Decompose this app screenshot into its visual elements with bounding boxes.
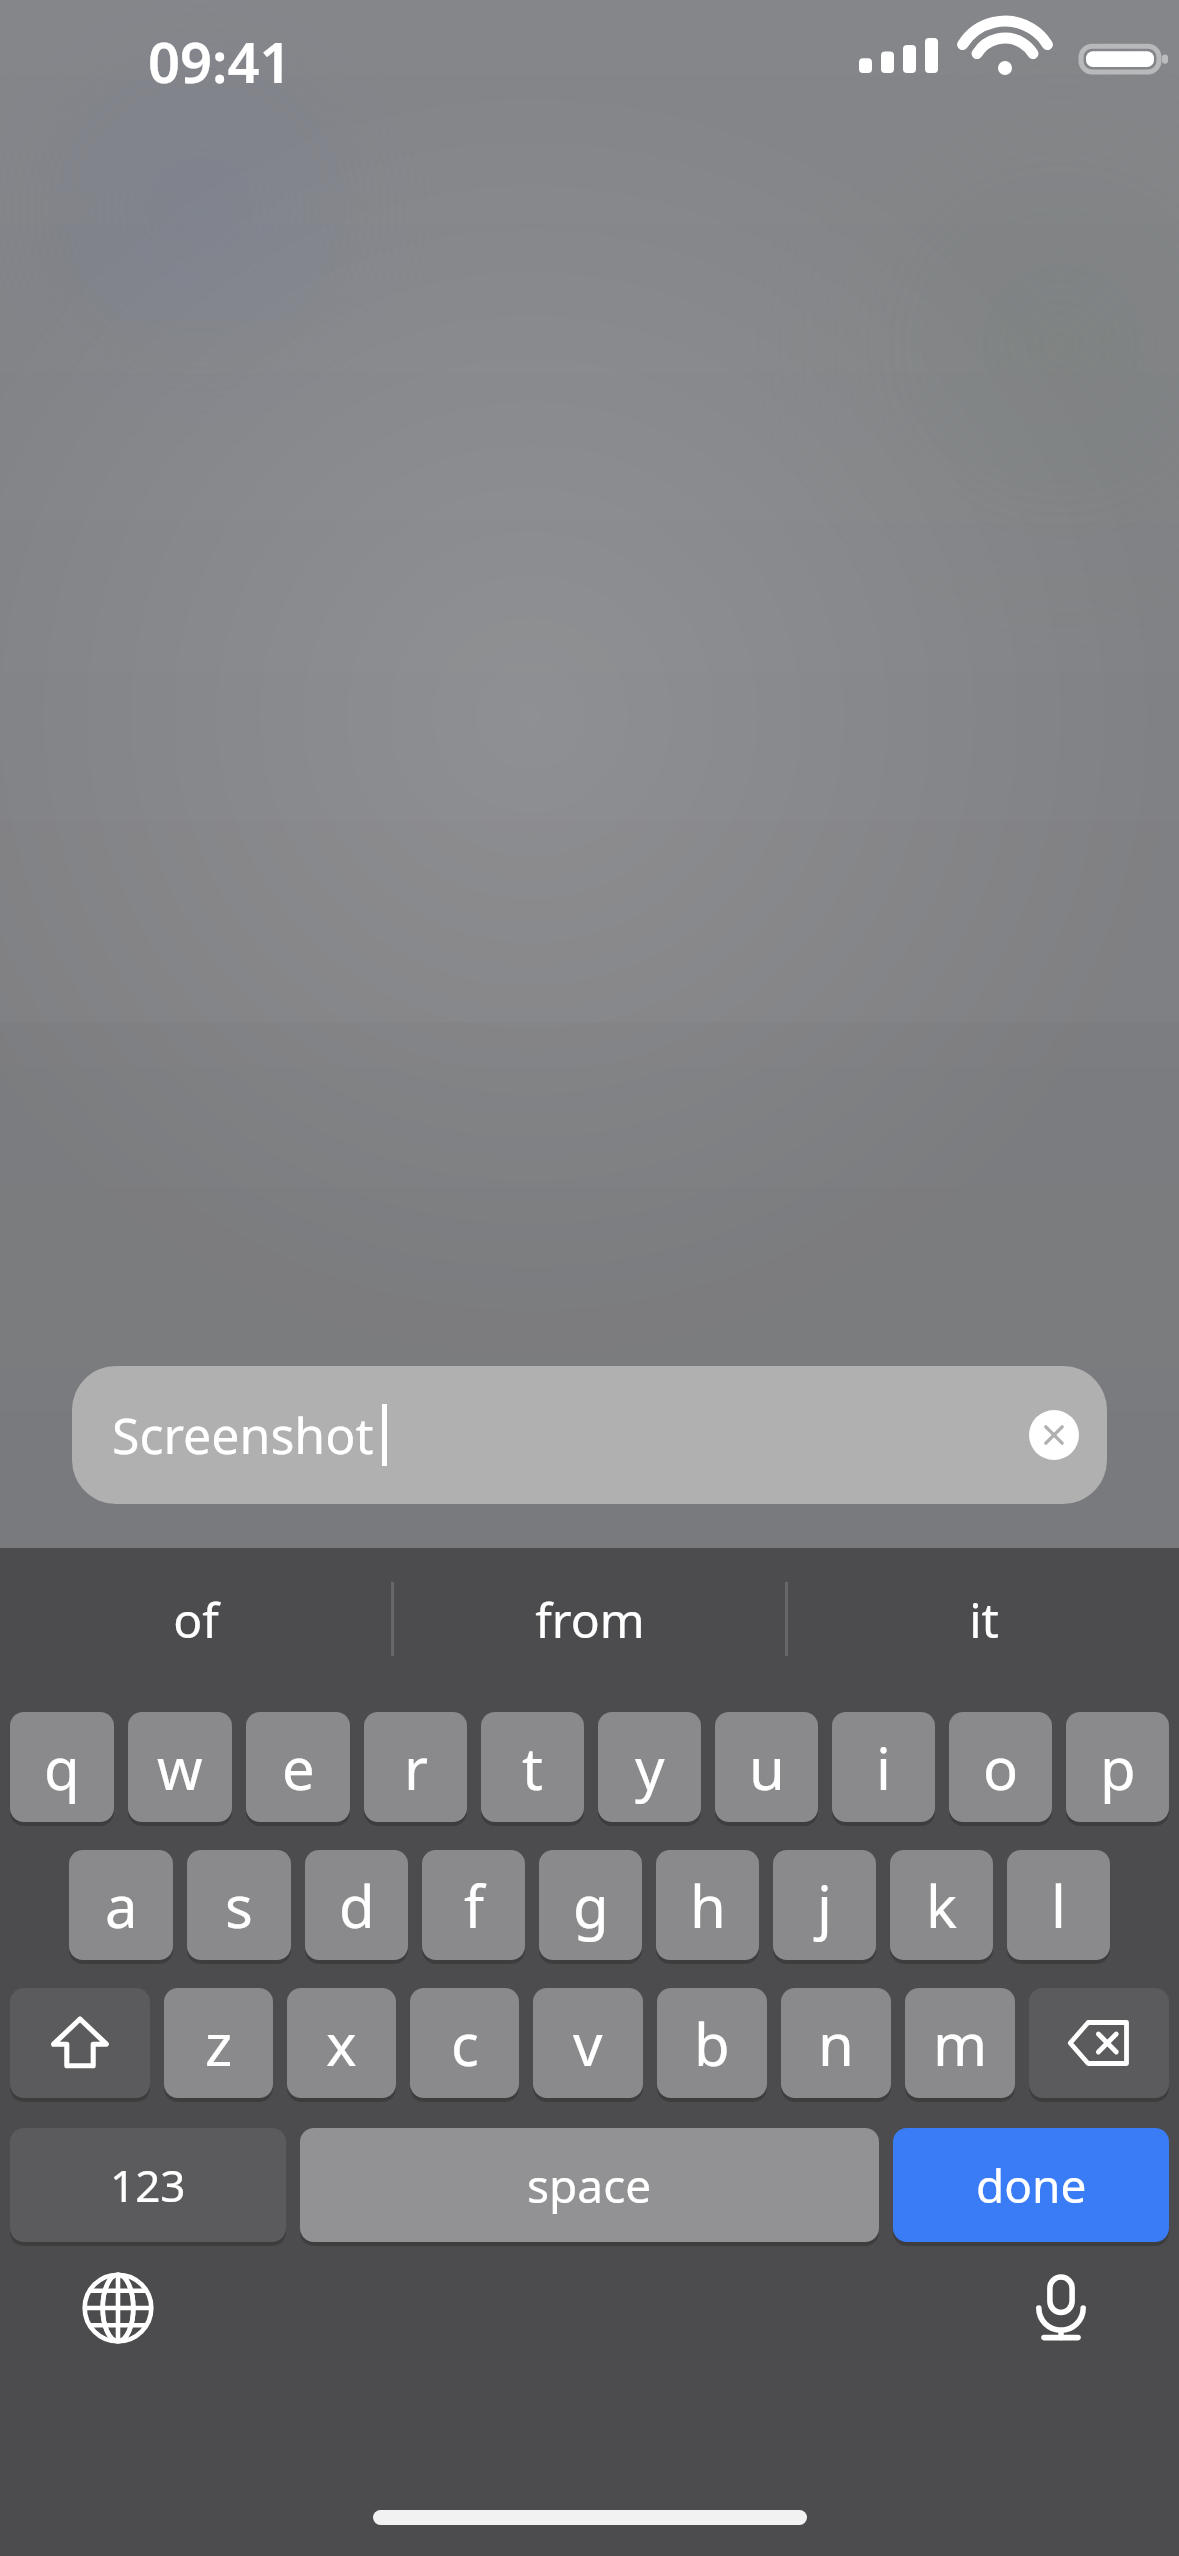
staticText: s bbox=[225, 1866, 253, 1945]
button[interactable]: Backspace bbox=[1029, 1988, 1169, 2098]
staticText: m bbox=[933, 2004, 988, 2083]
staticText: l bbox=[1051, 1866, 1066, 1945]
button[interactable]: p bbox=[1066, 1712, 1169, 1822]
button[interactable]: done bbox=[893, 2128, 1169, 2242]
button[interactable]: r bbox=[364, 1712, 467, 1822]
staticText: d bbox=[339, 1866, 375, 1945]
button[interactable]: space bbox=[300, 2128, 879, 2242]
staticText: o bbox=[983, 1728, 1019, 1807]
staticText: it bbox=[969, 1587, 999, 1652]
button[interactable]: h bbox=[656, 1850, 759, 1960]
button[interactable]: v bbox=[533, 1988, 643, 2098]
staticText: a bbox=[105, 1866, 138, 1945]
staticText: w bbox=[157, 1728, 203, 1807]
staticText: c bbox=[451, 2004, 479, 2083]
button[interactable]: n bbox=[781, 1988, 891, 2098]
staticText: g bbox=[573, 1866, 609, 1945]
staticText: done bbox=[976, 2154, 1087, 2217]
staticText: space bbox=[527, 2154, 652, 2217]
staticText: n bbox=[818, 2004, 854, 2083]
button[interactable]: c bbox=[410, 1988, 519, 2098]
staticText: of bbox=[173, 1587, 219, 1652]
button[interactable]: l bbox=[1007, 1850, 1110, 1960]
staticText: from bbox=[535, 1587, 645, 1652]
button[interactable]: m bbox=[905, 1988, 1015, 2098]
staticText: r bbox=[404, 1728, 428, 1807]
button[interactable]: e bbox=[246, 1712, 350, 1822]
button[interactable]: z bbox=[164, 1988, 273, 2098]
button[interactable]: b bbox=[657, 1988, 767, 2098]
staticText: k bbox=[926, 1866, 957, 1945]
staticText: h bbox=[690, 1866, 726, 1945]
staticText: v bbox=[573, 2004, 603, 2083]
staticText: f bbox=[464, 1866, 484, 1945]
button[interactable]: g bbox=[539, 1850, 642, 1960]
button[interactable]: w bbox=[128, 1712, 232, 1822]
staticText: z bbox=[205, 2004, 233, 2083]
staticText: e bbox=[282, 1728, 315, 1807]
button[interactable]: s bbox=[187, 1850, 291, 1960]
staticText: b bbox=[694, 2004, 730, 2083]
staticText: Screenshot bbox=[112, 1401, 374, 1469]
button[interactable]: from bbox=[394, 1548, 785, 1690]
staticText: i bbox=[876, 1728, 891, 1807]
button[interactable]: Clear text bbox=[1029, 1410, 1079, 1460]
button[interactable]: a bbox=[69, 1850, 173, 1960]
staticText: t bbox=[522, 1728, 543, 1807]
button[interactable]: o bbox=[949, 1712, 1052, 1822]
button[interactable]: k bbox=[890, 1850, 993, 1960]
button[interactable]: y bbox=[598, 1712, 701, 1822]
button[interactable]: Screenshot bbox=[72, 1366, 1107, 1504]
button[interactable]: Dictate bbox=[1019, 2266, 1103, 2350]
button[interactable]: Shift bbox=[10, 1988, 150, 2098]
button[interactable]: u bbox=[715, 1712, 818, 1822]
staticText: x bbox=[326, 2004, 357, 2083]
button[interactable]: d bbox=[305, 1850, 408, 1960]
staticText: q bbox=[44, 1728, 80, 1807]
button[interactable]: j bbox=[773, 1850, 876, 1960]
staticText: 123 bbox=[110, 2155, 186, 2215]
button[interactable]: t bbox=[481, 1712, 584, 1822]
button[interactable]: of bbox=[0, 1548, 391, 1690]
staticText: y bbox=[635, 1728, 665, 1807]
staticText: p bbox=[1100, 1728, 1136, 1807]
button[interactable]: q bbox=[10, 1712, 114, 1822]
button[interactable]: f bbox=[422, 1850, 525, 1960]
button[interactable]: 123 bbox=[10, 2128, 286, 2242]
staticText: 09:41 bbox=[148, 23, 292, 99]
staticText: u bbox=[749, 1728, 785, 1807]
button[interactable]: Change keyboard language bbox=[76, 2266, 160, 2350]
button[interactable]: it bbox=[788, 1548, 1179, 1690]
button[interactable]: x bbox=[287, 1988, 396, 2098]
button[interactable]: i bbox=[832, 1712, 935, 1822]
staticText: j bbox=[817, 1866, 832, 1945]
